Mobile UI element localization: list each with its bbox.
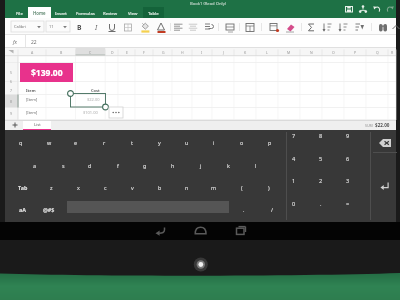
button[interactable]: m [203,179,225,195]
button[interactable]: a [24,157,46,173]
staticText: R [391,50,394,55]
button[interactable]: x [67,179,89,195]
button[interactable]: w [38,134,60,150]
button[interactable]: b [149,179,171,195]
button[interactable]: Find [377,21,389,33]
button[interactable]: c [94,179,116,195]
button[interactable]: I [90,21,102,33]
button[interactable]: o [231,134,253,150]
button[interactable]: Wrap text [203,21,215,33]
button[interactable]: Redo [385,4,395,14]
button[interactable]: List [23,120,51,130]
button[interactable]: . [235,201,253,217]
button[interactable]: Undo [372,4,382,14]
staticText: a [33,162,37,169]
button[interactable]: Align center [187,21,199,33]
button[interactable]: Save [344,4,354,14]
button[interactable]: Home [28,7,51,18]
button[interactable]: Back [153,223,167,237]
button[interactable]: e [65,134,87,150]
button[interactable]: / [263,201,281,217]
button[interactable]: Insert [51,7,70,18]
button[interactable]: Backspace [371,134,398,151]
button[interactable]: p [259,134,281,150]
button[interactable]: = [336,196,360,212]
button[interactable]: 3 [336,173,360,189]
staticText: Cost [91,88,100,93]
staticText: / [271,206,274,213]
button[interactable]: l [245,157,267,173]
button[interactable]: Clear [284,21,296,33]
button[interactable]: 11 [46,21,70,32]
button[interactable]: 0 [282,196,306,212]
button[interactable]: @#$ [37,201,61,217]
button[interactable]: Filter [353,21,365,33]
button[interactable]: Calibri [11,21,44,32]
button[interactable]: q [10,134,32,150]
button[interactable]: ) [258,179,280,195]
button[interactable]: k [217,157,239,173]
button[interactable]: r [93,134,115,150]
button[interactable]: Formulas [72,7,98,18]
button[interactable]: 8 [309,128,333,144]
button[interactable]: Enter [371,153,398,219]
button[interactable]: aA [12,201,32,217]
button[interactable]: 2 [309,173,333,189]
button[interactable]: View [123,7,142,18]
staticText: x [77,184,80,191]
button[interactable]: Sort ascending [321,21,333,33]
button[interactable]: Font color [155,21,167,33]
button[interactable]: AutoSum [305,21,317,33]
button[interactable]: d [79,157,101,173]
button[interactable]: 5 [309,151,333,167]
button[interactable]: 4 [282,151,306,167]
button[interactable]: File [11,7,28,18]
button[interactable]: y [148,134,170,150]
button[interactable]: 6 [336,151,360,167]
button[interactable]: 1 [282,173,306,189]
button[interactable]: v [121,179,143,195]
button[interactable]: ( [231,179,253,195]
button[interactable]: i [203,134,225,150]
button[interactable]: j [190,157,212,173]
button[interactable]: 9 [336,128,360,144]
button[interactable]: Cell styles [268,21,280,33]
button[interactable]: Sort descending [337,21,349,33]
button[interactable]: Align left [172,21,184,33]
button[interactable]: Fill color [139,21,151,33]
button[interactable]: Collapse ribbon [390,21,400,33]
button[interactable]: Review [99,7,122,18]
button[interactable]: Number format [244,21,256,33]
button[interactable]: . [309,196,333,212]
button[interactable]: Tab [12,179,34,195]
button[interactable]: Add sheet [9,120,21,130]
button[interactable]: f [107,157,129,173]
button[interactable]: Underline [106,21,118,33]
button[interactable]: Table [143,7,164,18]
button[interactable]: Borders [122,21,134,33]
button[interactable]: z [40,179,62,195]
staticText: 9 [10,111,13,116]
button[interactable]: g [134,157,156,173]
button[interactable]: n [176,179,198,195]
button[interactable]: 7 [282,128,306,144]
staticText: @#$ [43,206,55,213]
button[interactable]: Home [193,223,207,237]
staticText: 11 [49,24,54,29]
staticText: 7 [10,88,13,93]
button[interactable]: s [52,157,74,173]
staticText: K [244,50,247,55]
button[interactable]: $139.00 [20,63,73,82]
button[interactable]: B [73,21,85,33]
button[interactable]: Share [358,4,368,14]
button[interactable]: t [121,134,143,150]
button[interactable]: u [176,134,198,150]
staticText: 5 [319,155,323,163]
staticText: 9 [346,132,350,140]
button[interactable]: h [162,157,184,173]
button[interactable]: Merge cells [224,21,236,33]
staticText: 4 [292,155,296,163]
button[interactable]: More options [109,107,123,118]
button[interactable]: Recents [234,223,248,237]
